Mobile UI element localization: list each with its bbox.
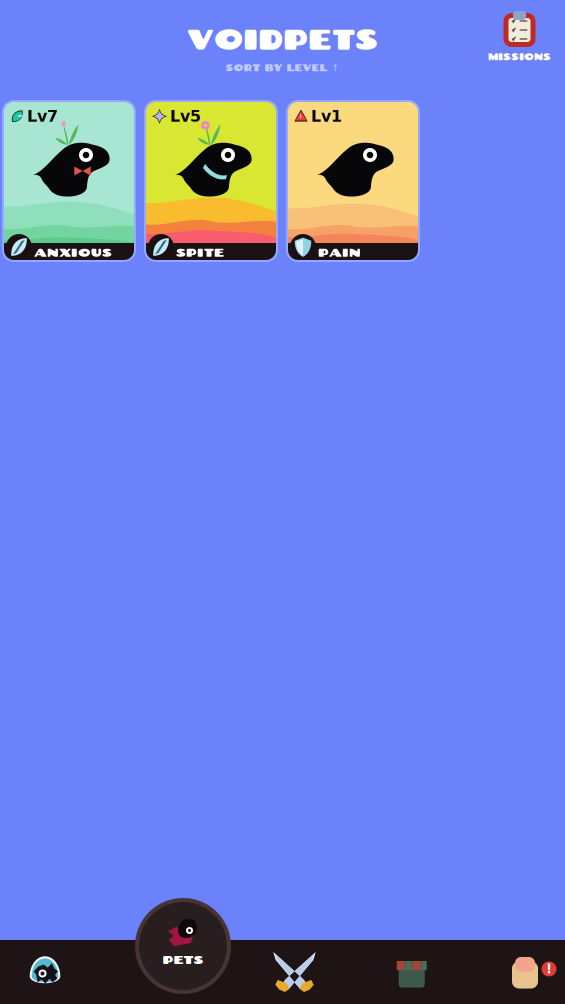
staticText: SORT BY LEVEL ↑	[225, 62, 339, 73]
button[interactable]: MISSIONS	[488, 0, 551, 101]
button[interactable]: Battle	[274, 952, 314, 992]
staticText: SPITE	[176, 245, 224, 259]
button[interactable]: Inventory	[509, 955, 541, 989]
button[interactable]: Lv7	[3, 101, 135, 261]
staticText: Lv1	[311, 107, 342, 126]
staticText: ANXIOUS	[34, 245, 112, 259]
staticText: VOIDPETS	[187, 22, 378, 56]
staticText: MISSIONS	[488, 51, 551, 62]
staticText: Lv7	[27, 107, 58, 126]
button[interactable]: Lv1	[287, 101, 419, 261]
staticText: !	[546, 961, 552, 977]
button[interactable]: PETS	[135, 898, 231, 994]
button[interactable]: Shop	[396, 956, 428, 988]
staticText: PETS	[162, 952, 203, 966]
button[interactable]: Hatch	[28, 955, 62, 989]
staticText: PAIN	[318, 245, 361, 259]
button[interactable]: Lv5	[145, 101, 277, 261]
staticText: Lv5	[170, 107, 201, 126]
